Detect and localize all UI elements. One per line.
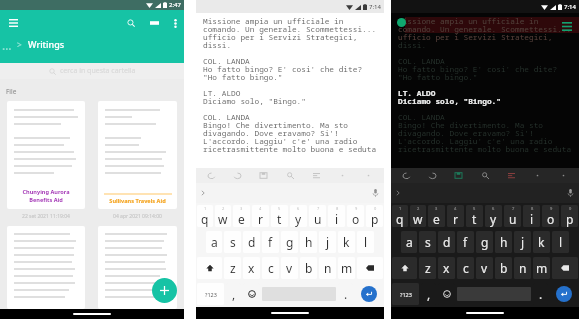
button[interactable]: 4	[447, 205, 464, 227]
button[interactable]: Undo	[205, 169, 218, 182]
button[interactable]: n	[514, 257, 531, 279]
button[interactable]: Navigation menu	[5, 15, 21, 31]
staticText: LT. ALDO Diciamo solo, "Bingo."	[398, 16, 501, 155]
button[interactable]: More options	[168, 16, 182, 30]
button[interactable]: Outline	[560, 19, 574, 33]
button[interactable]: n	[319, 257, 336, 279]
button[interactable]: f	[457, 231, 474, 253]
button[interactable]: 1	[392, 205, 408, 227]
button[interactable]: Expand suggestions	[198, 188, 208, 198]
button[interactable]: ,	[226, 283, 241, 305]
button[interactable]: l	[357, 231, 374, 253]
button[interactable]: x	[438, 257, 455, 279]
button[interactable]: .	[338, 283, 353, 305]
button[interactable]: m	[533, 257, 550, 279]
button[interactable]: 1	[197, 205, 213, 227]
button[interactable]: x	[243, 257, 260, 279]
button[interactable]: 2	[410, 205, 426, 227]
button[interactable]: a	[401, 231, 417, 253]
staticText: 9	[355, 206, 358, 211]
button[interactable]: 6	[485, 205, 502, 227]
staticText: 5	[278, 206, 281, 211]
button[interactable]	[552, 257, 578, 279]
button[interactable]: f	[262, 231, 279, 253]
button[interactable]: v	[476, 257, 493, 279]
button[interactable]: d	[438, 231, 455, 253]
button[interactable]: Change view	[146, 15, 162, 31]
button[interactable]: b	[495, 257, 512, 279]
button[interactable]	[438, 283, 455, 305]
button[interactable]: Format	[505, 169, 518, 182]
button[interactable]: 5	[466, 205, 483, 227]
button[interactable]: d	[243, 231, 260, 253]
button[interactable]: Chunying Aurora Benefits Aid	[7, 101, 85, 209]
button[interactable]: 8	[328, 205, 345, 227]
button[interactable]: a	[206, 231, 222, 253]
button[interactable]: Search	[123, 15, 139, 31]
button[interactable]: z	[224, 257, 241, 279]
button[interactable]: 7	[309, 205, 326, 227]
button[interactable]: Voice input	[565, 188, 575, 198]
button[interactable]: s	[224, 231, 241, 253]
button[interactable]: ?123	[392, 283, 419, 305]
button[interactable]: l	[552, 231, 569, 253]
button[interactable]: Save	[452, 169, 465, 182]
button[interactable]	[197, 257, 222, 279]
button[interactable]: Redo	[426, 169, 439, 182]
button[interactable]: Redo	[231, 169, 244, 182]
button[interactable]: More	[557, 169, 570, 182]
button[interactable]	[392, 257, 417, 279]
button[interactable]: ,	[421, 283, 436, 305]
button[interactable]: 0	[366, 205, 383, 227]
button[interactable]: Share	[531, 169, 544, 182]
button[interactable]: b	[300, 257, 317, 279]
button[interactable]: .	[533, 283, 548, 305]
button[interactable]: More	[362, 169, 375, 182]
button[interactable]: Format	[310, 169, 323, 182]
button[interactable]: h	[495, 231, 512, 253]
button[interactable]: 0	[561, 205, 578, 227]
button[interactable]: h	[300, 231, 317, 253]
button[interactable]: 8	[523, 205, 540, 227]
button[interactable]: c	[262, 257, 279, 279]
button[interactable]: g	[281, 231, 298, 253]
button[interactable]: Enter	[556, 286, 572, 302]
button[interactable]	[357, 257, 383, 279]
button[interactable]: k	[533, 231, 550, 253]
button[interactable]: 5	[271, 205, 288, 227]
button[interactable]: Undo	[400, 169, 413, 182]
button[interactable]: 9	[542, 205, 559, 227]
button[interactable]: 3	[233, 205, 250, 227]
button[interactable]: c	[457, 257, 474, 279]
button[interactable]: New note	[152, 278, 177, 303]
button[interactable]: j	[514, 231, 531, 253]
button[interactable]: 6	[290, 205, 307, 227]
button[interactable]: 9	[347, 205, 364, 227]
button[interactable]: g	[476, 231, 493, 253]
button[interactable]: k	[338, 231, 355, 253]
button[interactable]: s	[419, 231, 436, 253]
button[interactable]: Enter	[361, 286, 377, 302]
button[interactable]: ?123	[197, 283, 224, 305]
button[interactable]: 2	[215, 205, 231, 227]
button[interactable]: v	[281, 257, 298, 279]
button[interactable]: Voice input	[370, 188, 380, 198]
button[interactable]	[243, 283, 260, 305]
button[interactable]: 3	[428, 205, 445, 227]
button[interactable]: Share	[336, 169, 349, 182]
button[interactable]	[98, 226, 177, 309]
button[interactable]: j	[319, 231, 336, 253]
button[interactable]: Save	[257, 169, 270, 182]
button[interactable]: Find	[479, 169, 492, 182]
button[interactable]: Sullivans Travels Aid	[98, 101, 177, 209]
button[interactable]: m	[338, 257, 355, 279]
button[interactable]: z	[419, 257, 436, 279]
button[interactable]	[7, 226, 85, 309]
button[interactable]: 4	[252, 205, 269, 227]
button[interactable]: 7	[504, 205, 521, 227]
staticText: ,	[232, 286, 236, 302]
button[interactable]: Find	[284, 169, 297, 182]
button[interactable]: Expand suggestions	[393, 188, 403, 198]
